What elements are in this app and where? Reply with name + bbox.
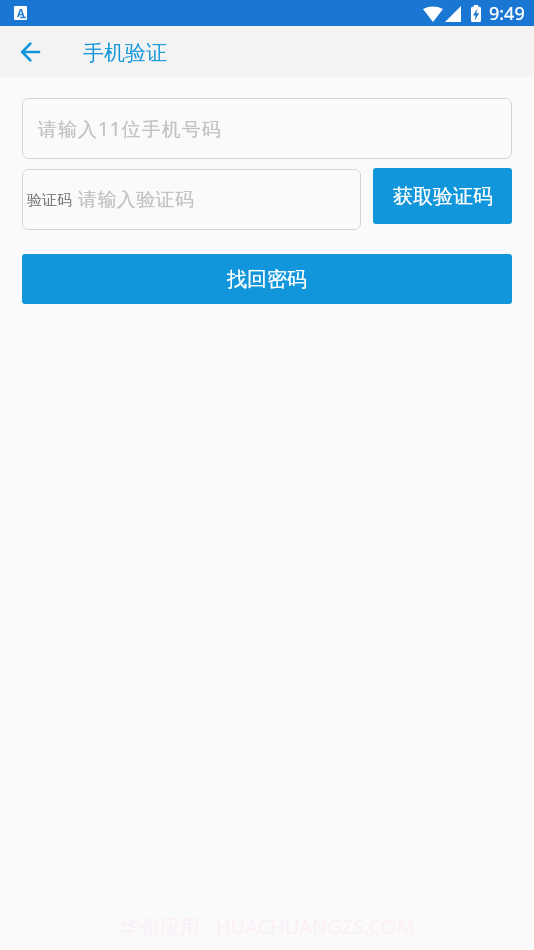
staticText: 手机验证 <box>83 40 167 66</box>
button[interactable]: 获取验证码 <box>373 168 512 224</box>
button[interactable]: 验证码 <box>22 169 361 230</box>
staticText: A <box>17 6 25 19</box>
button[interactable]: 找回密码 <box>22 254 512 304</box>
staticText: 9:49 <box>489 1 525 26</box>
staticText: 获取验证码 <box>393 184 493 209</box>
staticText: 华创应用 · HUACHUANGZS.COM <box>120 913 415 940</box>
staticText: 验证码 <box>27 191 72 210</box>
staticText: 请输入11位手机号码 <box>38 116 222 142</box>
staticText: 找回密码 <box>227 267 307 292</box>
staticText: 请输入验证码 <box>78 188 195 212</box>
button[interactable]: Back <box>8 30 52 74</box>
button[interactable]: 请输入11位手机号码 <box>22 98 512 159</box>
